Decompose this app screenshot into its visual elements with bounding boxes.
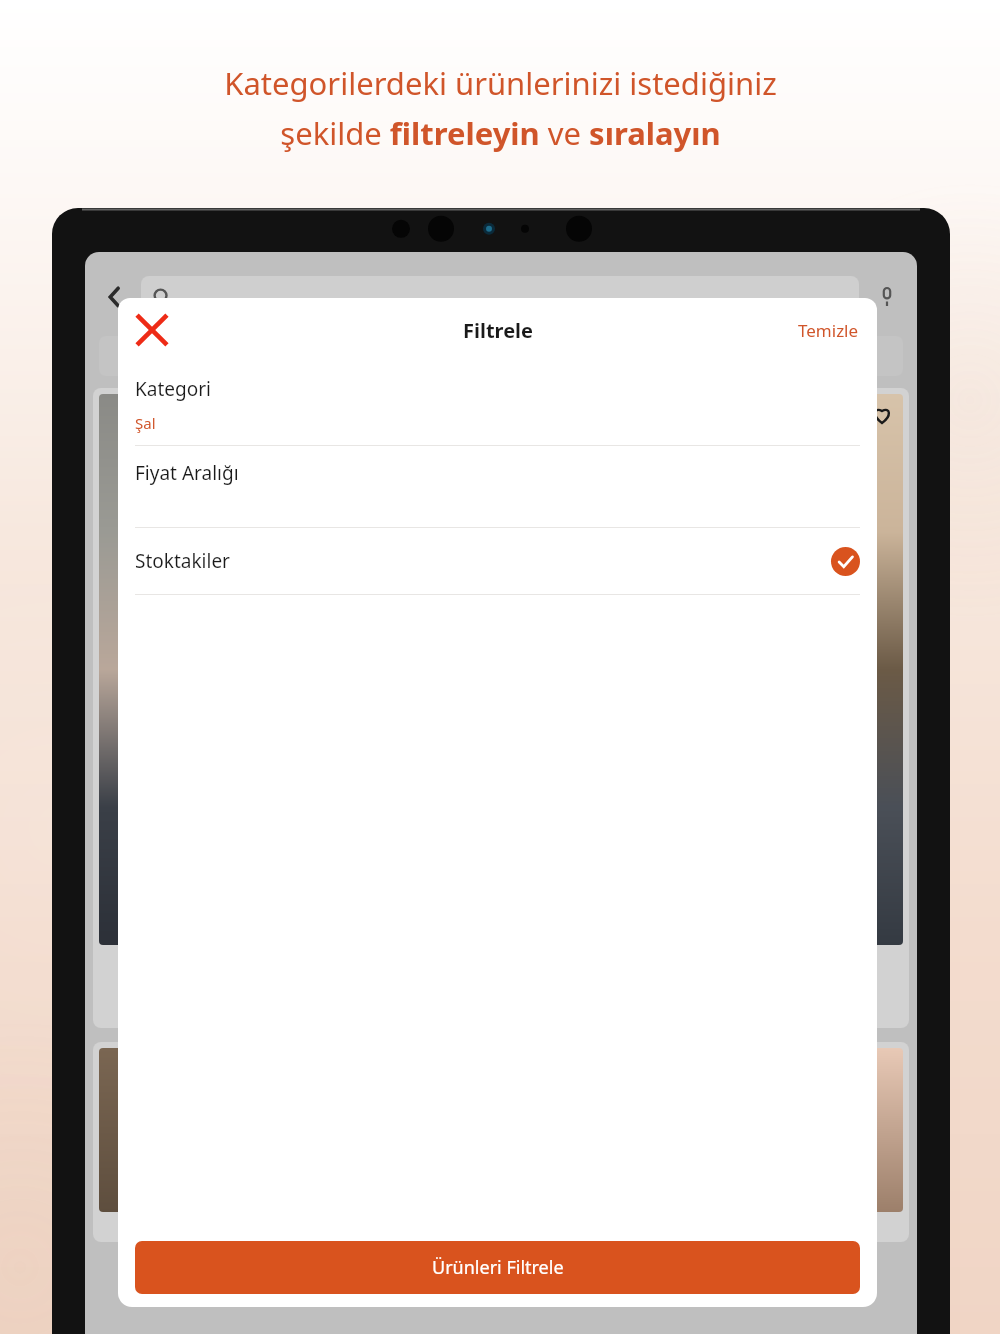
button[interactable]: Kategori bbox=[118, 362, 877, 445]
button[interactable]: Favorilere ekle bbox=[869, 402, 895, 428]
button[interactable]: Sesli arama bbox=[869, 279, 905, 315]
button[interactable] bbox=[141, 276, 859, 318]
staticText: Şal bbox=[135, 413, 156, 433]
button[interactable]: Temizle bbox=[790, 311, 867, 350]
button[interactable] bbox=[93, 1042, 293, 1242]
button[interactable] bbox=[93, 388, 293, 1028]
staticText: Filtrele bbox=[463, 317, 533, 344]
staticText: Temizle bbox=[798, 319, 859, 342]
button[interactable] bbox=[99, 336, 173, 376]
staticText: şekilde filtreleyin ve sıralayın bbox=[280, 112, 721, 154]
button[interactable]: Geri bbox=[97, 279, 133, 315]
staticText: Kategorilerdeki ürünlerinizi istediğiniz bbox=[224, 62, 777, 104]
button[interactable]: Ürünleri Filtrele bbox=[135, 1241, 860, 1294]
staticText: Stoktakiler bbox=[135, 548, 230, 574]
button[interactable]: Kapat bbox=[126, 304, 178, 356]
staticText: Fiyat Aralığı bbox=[135, 460, 239, 486]
button[interactable] bbox=[753, 336, 903, 376]
staticText: Ürünleri Filtrele bbox=[432, 1255, 564, 1280]
button[interactable]: Favorilere ekle bbox=[709, 388, 909, 1028]
staticText: Kategori bbox=[135, 376, 211, 402]
button[interactable]: Fiyat Aralığı bbox=[118, 446, 877, 527]
button[interactable]: Stoktakiler bbox=[118, 528, 877, 594]
button[interactable] bbox=[709, 1042, 909, 1242]
